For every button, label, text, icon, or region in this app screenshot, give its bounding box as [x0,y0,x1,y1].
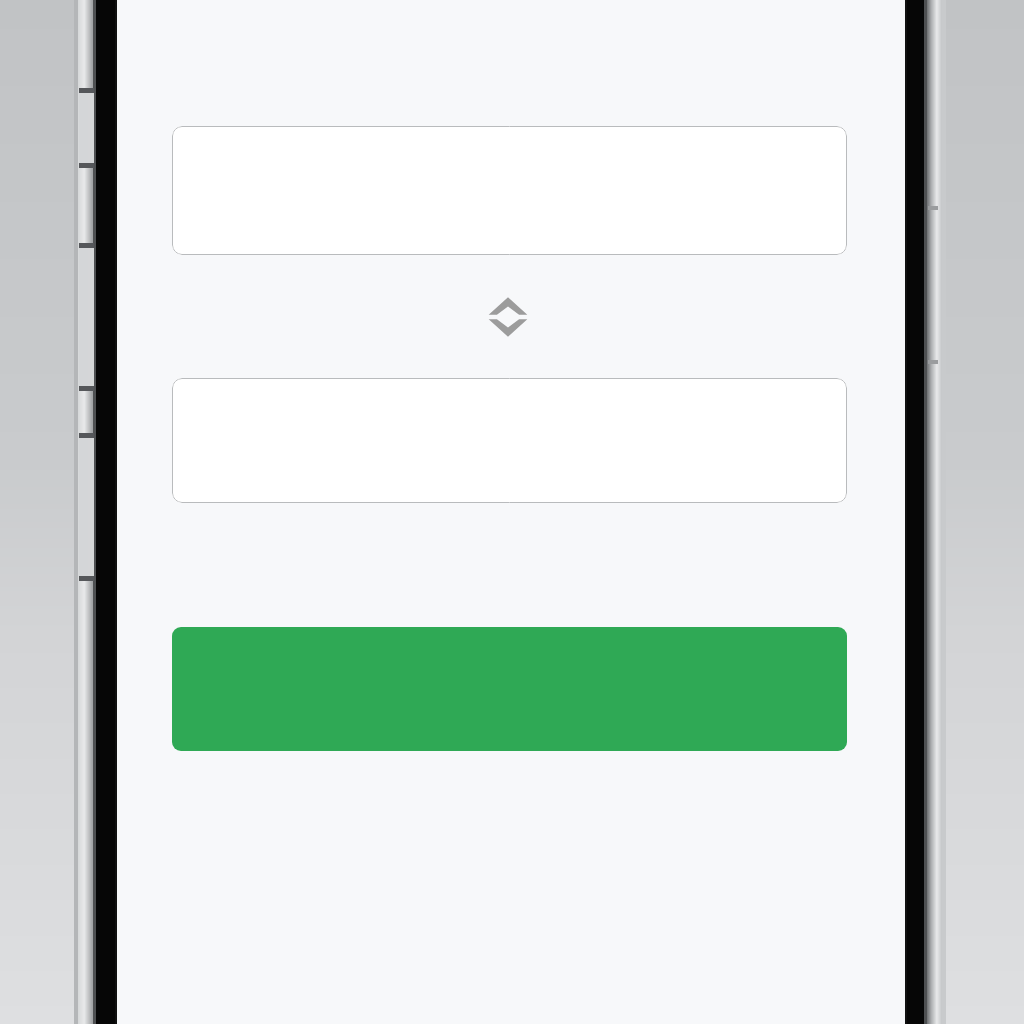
button[interactable]: Swap [480,289,536,345]
button[interactable]: Convert [172,627,847,751]
button[interactable]: From amount field [172,126,847,255]
button[interactable]: To amount field [172,378,847,503]
